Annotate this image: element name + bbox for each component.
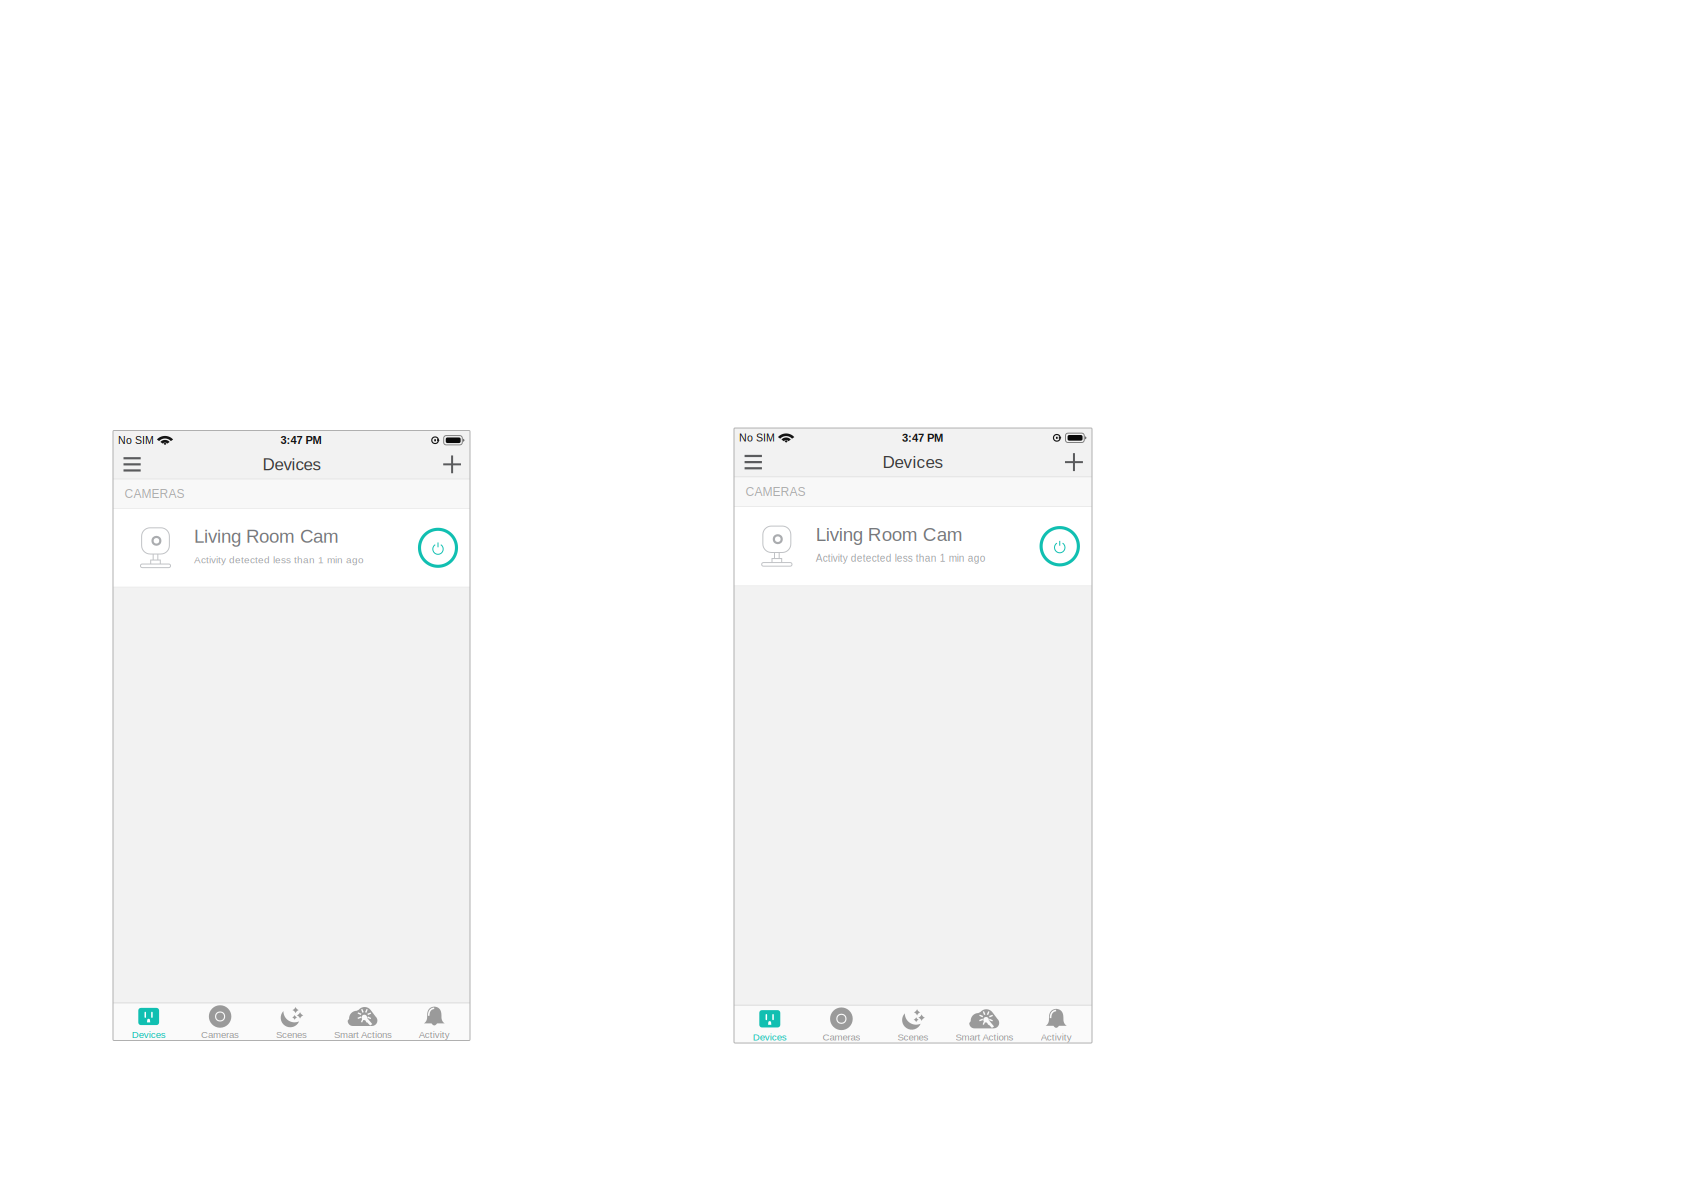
staticText: Activity <box>1041 1032 1072 1042</box>
staticText: Living Room Cam <box>816 524 963 545</box>
button[interactable]: Scenes <box>256 1007 327 1040</box>
staticText: CAMERAS <box>124 487 184 500</box>
button[interactable]: Add device <box>1061 449 1087 475</box>
button[interactable]: Devices <box>113 1007 184 1040</box>
button[interactable]: Smart Actions <box>327 1007 399 1040</box>
button[interactable]: Menu <box>738 448 768 476</box>
staticText: Scenes <box>276 1029 307 1040</box>
staticText: Living Room Cam <box>194 526 339 547</box>
staticText: Scenes <box>897 1032 928 1042</box>
button[interactable]: Menu <box>117 450 147 478</box>
button[interactable]: Cameras <box>184 1007 256 1040</box>
staticText: Cameras <box>822 1032 860 1042</box>
button[interactable]: Activity <box>399 1007 470 1040</box>
staticText: Smart Actions <box>334 1029 392 1040</box>
staticText: Cameras <box>201 1029 239 1040</box>
button[interactable]: Scenes <box>877 1009 949 1043</box>
button[interactable]: Activity <box>1020 1009 1092 1043</box>
staticText: Activity detected less than 1 min ago <box>194 554 364 565</box>
staticText: Devices <box>753 1032 787 1042</box>
staticText: 3:47 PM <box>902 432 943 444</box>
button[interactable]: Living Room Cam <box>734 507 1092 585</box>
staticText: Devices <box>132 1029 166 1040</box>
button[interactable]: Add device <box>439 451 465 477</box>
staticText: No SIM <box>739 432 775 444</box>
button[interactable]: Smart Actions <box>949 1009 1020 1043</box>
staticText: No SIM <box>118 434 154 446</box>
button[interactable]: Devices <box>734 1009 806 1043</box>
staticText: Activity <box>419 1029 450 1040</box>
button[interactable]: Cameras <box>806 1009 877 1043</box>
staticText: Smart Actions <box>956 1032 1014 1042</box>
staticText: 3:47 PM <box>281 434 322 446</box>
staticText: Devices <box>262 455 320 474</box>
button[interactable]: Living Room Cam <box>113 509 470 587</box>
staticText: Activity detected less than 1 min ago <box>816 553 986 564</box>
staticText: Devices <box>882 453 943 472</box>
staticText: CAMERAS <box>746 485 806 498</box>
